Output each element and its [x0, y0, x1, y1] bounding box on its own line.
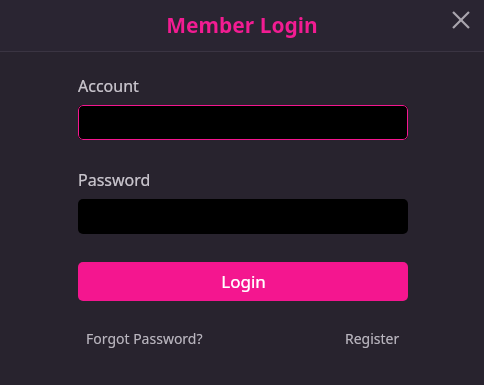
staticText: Password — [78, 169, 151, 189]
button[interactable]: Register — [337, 325, 408, 352]
button[interactable]: Close — [443, 2, 479, 38]
button[interactable]: Forgot Password? — [78, 325, 211, 352]
staticText: Forgot Password? — [86, 329, 203, 348]
staticText: Account — [78, 75, 139, 95]
staticText: Member Login — [166, 11, 318, 40]
button[interactable]: Login — [78, 262, 408, 301]
button[interactable]: Account input field — [78, 105, 408, 140]
staticText: Register — [345, 329, 400, 348]
staticText: Login — [221, 270, 266, 293]
